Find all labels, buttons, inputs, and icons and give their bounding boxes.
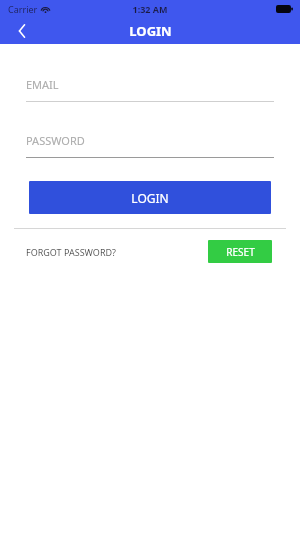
staticText: LOGIN bbox=[131, 190, 169, 206]
staticText: RESET bbox=[226, 245, 255, 259]
button[interactable]: RESET bbox=[208, 240, 272, 263]
staticText: EMAIL bbox=[26, 77, 59, 92]
staticText: PASSWORD bbox=[26, 133, 85, 148]
button[interactable]: LOGIN bbox=[29, 181, 271, 214]
button[interactable]: FORGOT PASSWORD? bbox=[26, 246, 116, 258]
button[interactable]: EMAIL bbox=[26, 77, 274, 102]
staticText: Carrier bbox=[8, 3, 38, 15]
button[interactable]: Back bbox=[0, 18, 44, 44]
staticText: LOGIN bbox=[129, 22, 172, 40]
button[interactable]: PASSWORD bbox=[26, 133, 274, 158]
staticText: 1:32 AM bbox=[132, 3, 168, 15]
